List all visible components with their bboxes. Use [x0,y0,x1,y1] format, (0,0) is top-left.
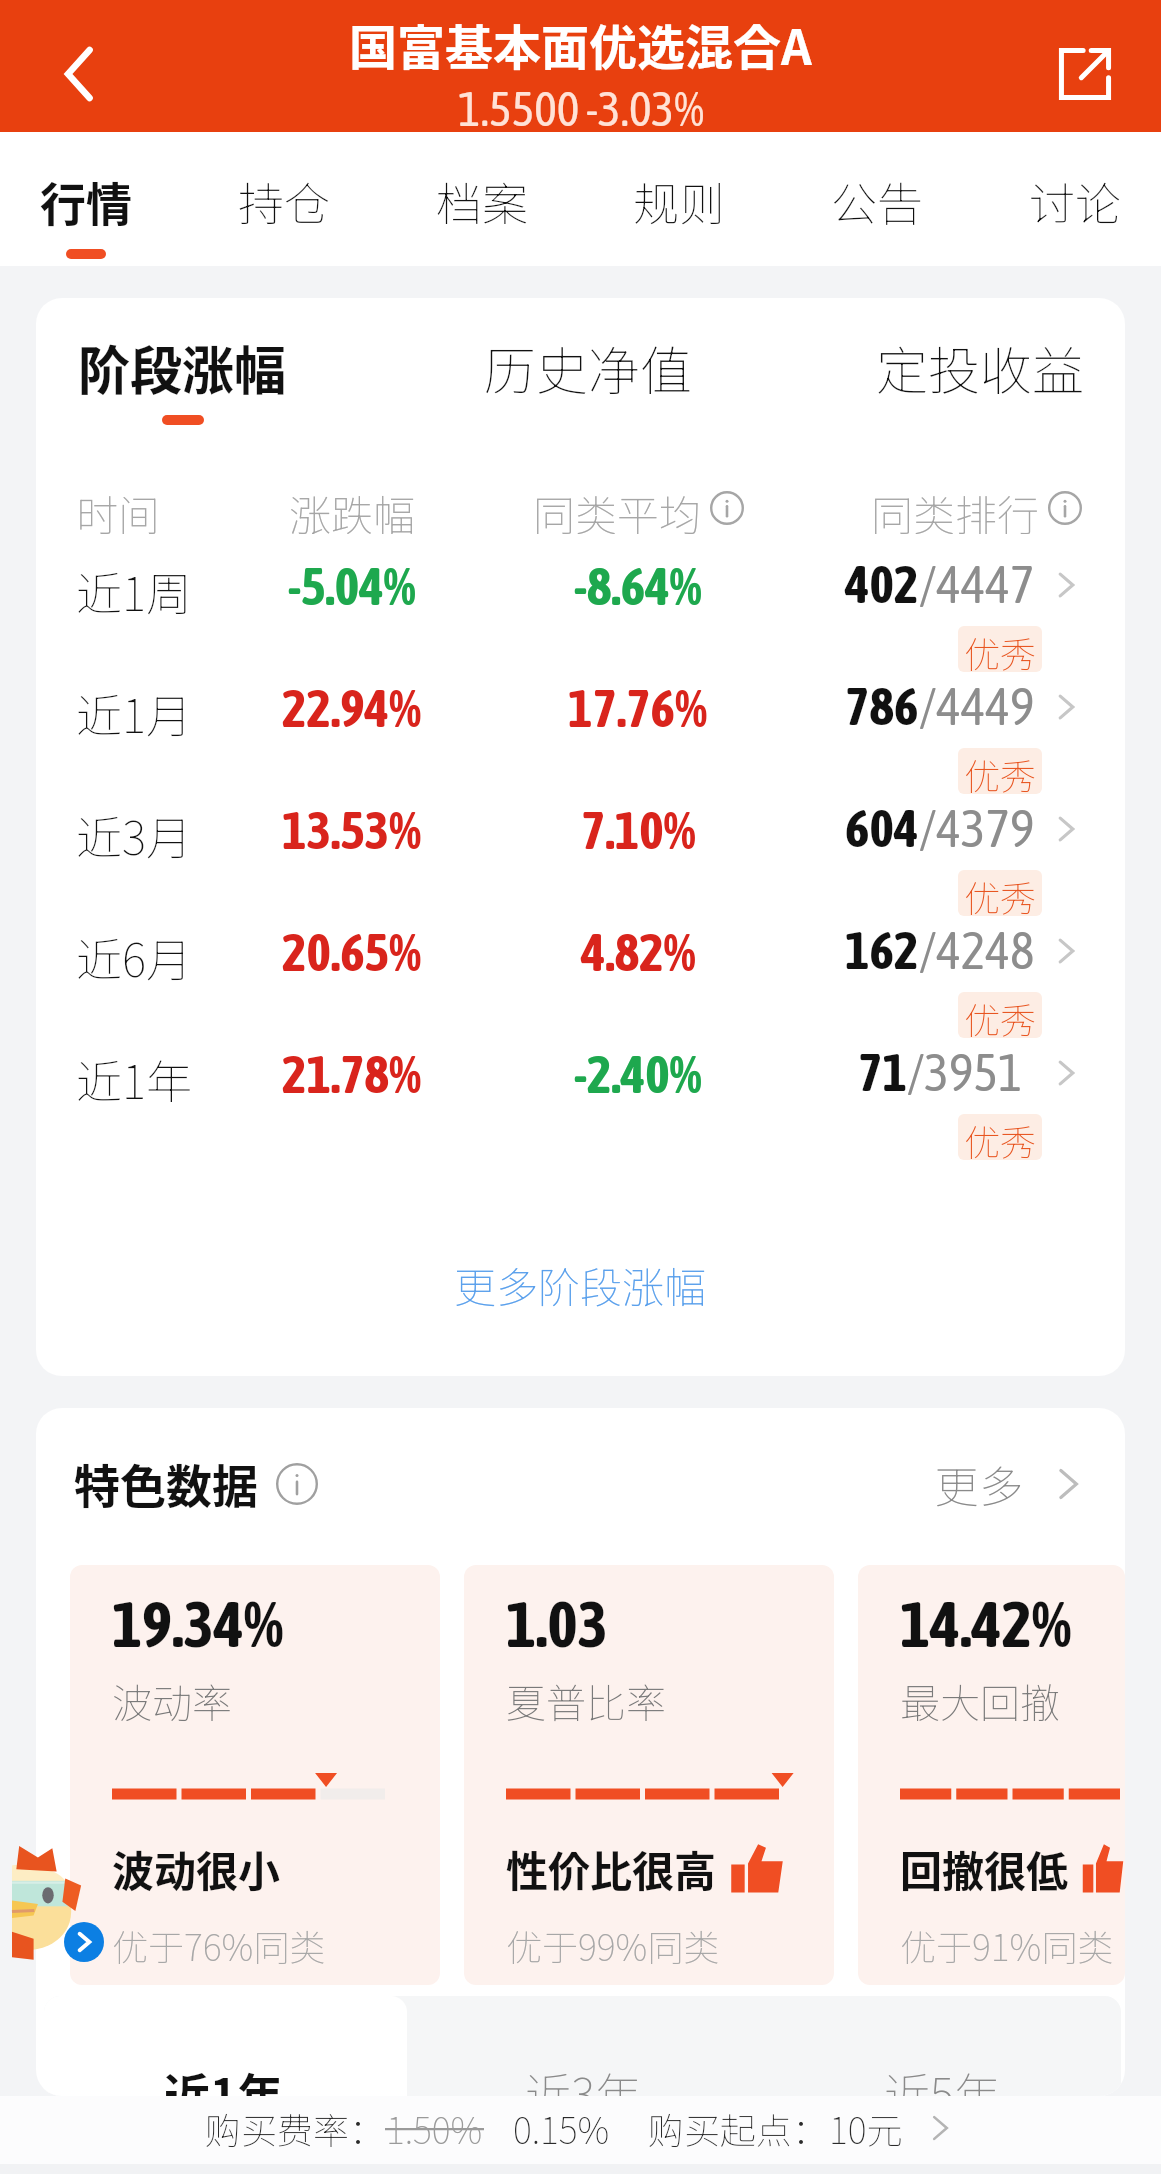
button[interactable]: 1.03 [464,1565,834,1985]
staticText: 1.5500 -3.03% [458,81,704,136]
staticText: 近5年 [884,2059,1000,2096]
staticText: 4.82% [581,922,696,982]
staticText: 同类平均 [533,482,702,534]
button[interactable]: 持仓 [238,132,330,266]
button[interactable]: 近1年 [44,1996,403,2096]
staticText: 162 [845,920,919,980]
button[interactable]: 近1周 [36,554,1125,676]
staticText: /4379 [919,798,1035,858]
staticText: 优秀 [964,748,1037,794]
staticText: 优秀 [964,992,1037,1038]
staticText: 行情 [40,168,132,235]
staticText: 档案 [436,168,528,235]
staticText: 近6月 [76,924,192,991]
staticText: 定投收益 [876,330,1085,405]
staticText: 604 [845,798,919,858]
button[interactable]: 规则 [633,132,725,266]
staticText: 1.50% [386,2102,483,2154]
staticText: 时间 [76,482,161,534]
staticText: 10元 [829,2102,903,2154]
staticText: 公告 [831,168,923,235]
button[interactable]: 公告 [831,132,923,266]
button[interactable]: 近6月 [36,920,1125,1042]
staticText: 786 [845,676,919,736]
staticText: 规则 [633,168,725,235]
staticText: 近1周 [76,558,192,625]
button[interactable]: Share [1037,0,1161,132]
button[interactable]: 近3月 [36,798,1125,920]
staticText: 波动率 [112,1672,232,1730]
staticText: /4447 [919,554,1035,614]
staticText: 7.10% [581,800,696,860]
button[interactable]: 19.34% [70,1565,440,1985]
staticText: 涨跌幅 [289,482,416,534]
button[interactable]: 讨论 [1029,132,1121,266]
staticText: 最大回撤 [900,1672,1060,1730]
staticText: -5.04% [288,556,416,616]
button[interactable]: 定投收益 [876,330,1085,415]
staticText: 17.76% [568,678,708,738]
staticText: 同类排行 [871,482,1040,534]
staticText: 回撤很低 [900,1838,1069,1899]
staticText: 波动很小 [112,1838,281,1899]
staticText: 优秀 [964,870,1037,916]
button[interactable]: 近5年 [762,1996,1121,2096]
button[interactable]: 阶段涨幅 [78,330,287,425]
staticText: 近1月 [76,680,192,747]
staticText: -8.64% [574,556,702,616]
staticText: 优于76%同类 [112,1919,326,1971]
button[interactable]: 近3年 [403,1996,762,2096]
staticText: 近1年 [164,2059,284,2096]
staticText: 讨论 [1029,168,1121,235]
staticText: /3951 [907,1042,1023,1102]
button[interactable]: 更多 [935,1452,1089,1516]
staticText: 近1年 [76,1046,192,1113]
staticText: 购买费率： [205,2102,386,2154]
staticText: 近3月 [76,802,192,869]
button[interactable]: 近1年 [36,1042,1125,1164]
staticText: 0.15% [513,2102,610,2154]
button[interactable]: 14.42% [858,1565,1125,1985]
button[interactable]: 历史净值 [484,330,693,415]
staticText: 更多 [935,1452,1023,1516]
staticText: 优于99%同类 [506,1919,720,1971]
staticText: /4449 [919,676,1035,736]
button[interactable]: Open assistant [64,1922,104,1962]
staticText: 1.03 [506,1587,608,1660]
staticText: /4248 [919,920,1035,980]
staticText: 20.65% [282,922,422,982]
staticText: 优秀 [964,1114,1037,1160]
button[interactable]: 购买费率： [0,2096,1161,2164]
staticText: 持仓 [238,168,330,235]
staticText: 性价比很高 [506,1838,717,1899]
staticText: 特色数据 [74,1450,258,1517]
staticText: 优秀 [964,626,1037,672]
button[interactable]: 行情 [40,132,132,266]
button[interactable]: 档案 [436,132,528,266]
staticText: 阶段涨幅 [78,330,287,405]
button[interactable]: Back [0,0,124,132]
staticText: 夏普比率 [506,1672,666,1730]
staticText: 19.34% [112,1587,284,1660]
button[interactable]: 更多阶段涨幅 [36,1240,1125,1328]
staticText: 购买起点： [648,2102,829,2154]
button[interactable]: 近1月 [36,676,1125,798]
staticText: 近3年 [525,2059,641,2096]
staticText: 14.42% [900,1587,1072,1660]
staticText: 优于91%同类 [900,1919,1114,1971]
staticText: 13.53% [282,800,422,860]
staticText: -2.40% [574,1044,702,1104]
staticText: 402 [845,554,919,614]
staticText: 更多阶段涨幅 [454,1254,707,1315]
staticText: 21.78% [282,1044,422,1104]
staticText: 71 [858,1042,907,1102]
staticText: 22.94% [282,678,422,738]
staticText: 国富基本面优选混合A [349,9,812,79]
staticText: 历史净值 [484,330,693,405]
